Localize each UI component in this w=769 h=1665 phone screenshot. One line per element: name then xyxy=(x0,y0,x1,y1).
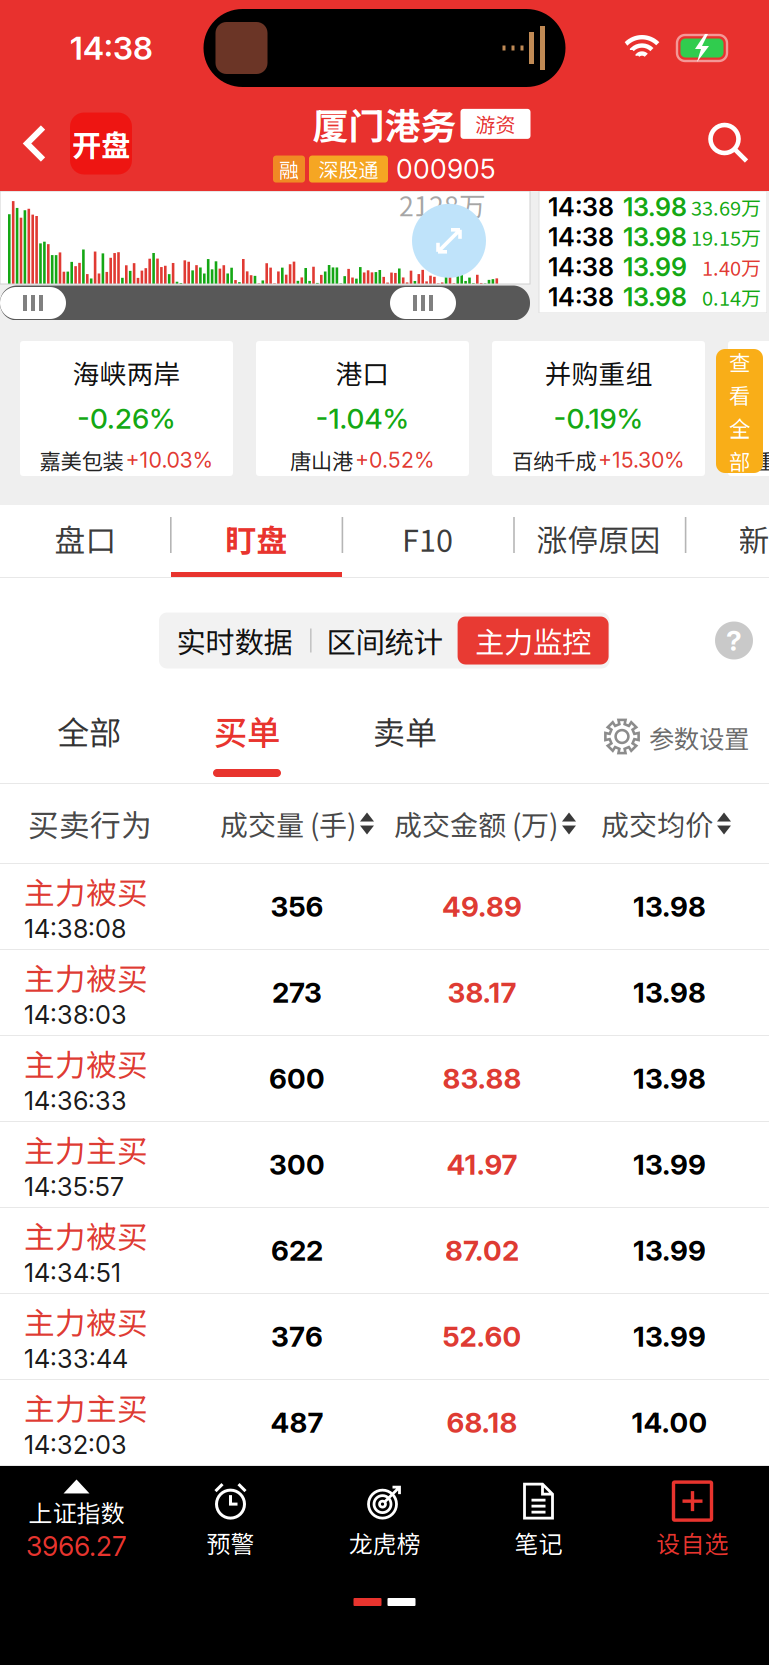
staticText: 全 xyxy=(729,412,750,443)
button[interactable]: 上证指数 xyxy=(0,1466,153,1576)
staticText: 600 xyxy=(269,1062,325,1095)
staticText: 融 xyxy=(279,155,299,184)
button[interactable]: 并购重组 xyxy=(492,341,705,476)
staticText: 13.99 xyxy=(633,1148,706,1181)
staticText: 3966.27 xyxy=(26,1530,127,1562)
button[interactable]: Search xyxy=(689,96,769,191)
button[interactable]: 买单 xyxy=(168,692,326,783)
staticText: 2128万 xyxy=(399,185,486,224)
staticText: 300 xyxy=(269,1148,325,1181)
button[interactable]: 参数设置 xyxy=(603,692,769,783)
staticText: 14:38 xyxy=(548,192,614,222)
staticText: 33.69万 xyxy=(691,192,761,221)
staticText: 14:35:57 xyxy=(24,1171,124,1202)
staticText: 14:38:03 xyxy=(24,999,127,1030)
staticText: F10 xyxy=(402,516,453,561)
staticText: 14:32:03 xyxy=(24,1429,127,1460)
button[interactable]: 区间统计 xyxy=(312,612,458,668)
button[interactable]: 查 xyxy=(716,349,763,473)
staticText: 主力被买 xyxy=(24,1041,148,1085)
button[interactable]: Help xyxy=(715,621,753,659)
button[interactable]: 海峡两岸 xyxy=(20,341,233,476)
staticText: 14.00 xyxy=(631,1406,707,1439)
button[interactable]: 主力主买 xyxy=(0,1380,769,1466)
staticText: 游资 xyxy=(475,109,515,138)
staticText: 买卖行为 xyxy=(28,801,152,846)
staticText: 并购重组 xyxy=(544,353,652,392)
staticText: 14:38 xyxy=(548,282,614,312)
staticText: 487 xyxy=(270,1406,323,1439)
button[interactable]: 主力监控 xyxy=(458,616,609,664)
staticText: +0.52% xyxy=(355,447,435,473)
staticText: 13.98 xyxy=(623,222,687,252)
button[interactable]: 涨停原因 xyxy=(513,505,684,577)
staticText: 唐山港 xyxy=(290,444,353,475)
staticText: 49.89 xyxy=(442,890,522,923)
button[interactable]: F10 xyxy=(342,505,513,577)
staticText: 实时数据 xyxy=(176,619,292,662)
button[interactable]: 新闻 xyxy=(684,505,769,577)
staticText: 上证指数 xyxy=(28,1494,124,1529)
button[interactable]: 盘口 xyxy=(0,505,171,577)
staticText: 0.14万 xyxy=(702,282,761,311)
staticText: 13.99 xyxy=(623,252,687,282)
staticText: 厦门港务 xyxy=(312,98,456,150)
button[interactable]: 主力被买 xyxy=(0,1036,769,1122)
staticText: 主力被买 xyxy=(24,955,148,999)
button[interactable]: 全部 xyxy=(10,692,168,783)
staticText: 41.97 xyxy=(446,1148,517,1181)
staticText: 13.98 xyxy=(623,192,687,222)
staticText: 主力被买 xyxy=(24,1213,148,1257)
staticText: 356 xyxy=(270,890,323,923)
staticText: 83.88 xyxy=(442,1062,521,1095)
button[interactable]: 预警 xyxy=(153,1466,307,1576)
staticText: 主力被买 xyxy=(24,869,148,913)
staticText: +15.30% xyxy=(598,447,685,473)
button[interactable]: 盯盘 xyxy=(171,505,342,577)
button[interactable]: 主力被买 xyxy=(0,864,769,950)
staticText: 52.60 xyxy=(442,1320,521,1353)
staticText: 13.99 xyxy=(633,1234,706,1267)
staticText: 成交金额 (万) xyxy=(394,803,558,844)
staticText: 13.98 xyxy=(633,1062,706,1095)
button[interactable]: 主力主买 xyxy=(0,1122,769,1208)
staticText: 38.17 xyxy=(447,976,516,1009)
staticText: 主力主买 xyxy=(24,1385,148,1429)
staticText: -0.26% xyxy=(77,402,176,435)
button[interactable]: 主力被买 xyxy=(0,1294,769,1380)
staticText: 参数设置 xyxy=(649,719,749,756)
staticText: 卖单 xyxy=(373,707,437,754)
button[interactable]: 主力被买 xyxy=(0,1208,769,1294)
staticText: 14:38 xyxy=(548,222,614,252)
staticText: 13.98 xyxy=(633,976,706,1009)
staticText: 000905 xyxy=(396,153,496,185)
button[interactable]: 港口 xyxy=(256,341,469,476)
staticText: 看 xyxy=(729,379,750,410)
button[interactable]: 设自选 xyxy=(615,1466,769,1576)
button[interactable]: 主力被买 xyxy=(0,950,769,1036)
staticText: 龙虎榜 xyxy=(348,1525,420,1560)
staticText: 区间统计 xyxy=(327,619,443,662)
button[interactable]: Back xyxy=(0,96,70,191)
button[interactable]: 开盘 xyxy=(70,112,132,174)
button[interactable]: 笔记 xyxy=(461,1466,615,1576)
staticText: 新闻 xyxy=(738,516,769,561)
button[interactable]: 卖单 xyxy=(326,692,484,783)
staticText: 涨停原因 xyxy=(536,516,660,561)
staticText: 成交量 (手) xyxy=(220,803,356,844)
staticText: 1.40万 xyxy=(702,252,761,281)
staticText: 深股通 xyxy=(318,155,378,184)
button[interactable]: 百货 xyxy=(728,341,769,476)
staticText: 13.98 xyxy=(633,890,706,923)
staticText: 273 xyxy=(272,976,322,1009)
button[interactable]: 龙虎榜 xyxy=(307,1466,461,1576)
staticText: -0.19% xyxy=(553,402,643,435)
staticText: 部 xyxy=(729,445,750,476)
staticText: ? xyxy=(726,624,742,657)
staticText: 重庆百货 xyxy=(755,444,769,475)
staticText: 百纳千成 xyxy=(512,444,596,475)
staticText: 14:36:33 xyxy=(24,1085,127,1116)
staticText: 622 xyxy=(271,1234,323,1267)
staticText: 笔记 xyxy=(514,1525,562,1560)
button[interactable]: 实时数据 xyxy=(159,612,310,668)
